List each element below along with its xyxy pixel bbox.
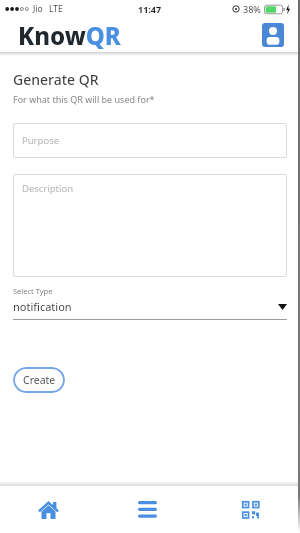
staticText: Create (23, 373, 56, 387)
button[interactable]: Purpose (13, 123, 287, 158)
button[interactable] (0, 486, 100, 533)
button[interactable]: Description (13, 174, 287, 277)
button[interactable]: notification (13, 299, 287, 314)
staticText: Description (22, 182, 74, 195)
button[interactable] (100, 486, 200, 533)
button[interactable]: Create (13, 367, 65, 393)
button[interactable] (200, 486, 300, 533)
staticText: 11:47 (138, 3, 162, 15)
staticText: LTE (49, 3, 63, 15)
staticText: For what this QR will be used for* (13, 93, 155, 105)
staticText: notification (13, 299, 278, 314)
staticText: Purpose (22, 134, 60, 147)
staticText: 38% (243, 3, 261, 15)
staticText: Generate QR (13, 70, 99, 89)
button[interactable] (262, 23, 284, 47)
staticText: KnowQR (18, 19, 121, 52)
staticText: Jio (33, 3, 43, 15)
staticText: Select Type (13, 286, 53, 296)
